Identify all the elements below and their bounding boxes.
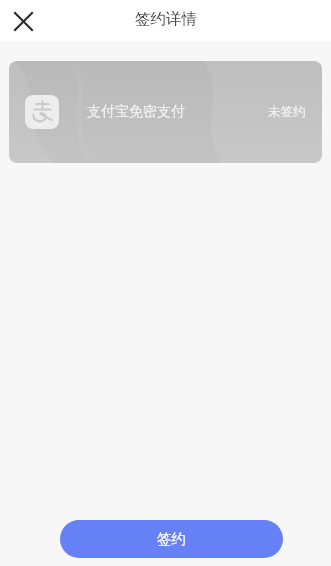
staticText: 签约: [157, 530, 186, 548]
button[interactable]: Close: [4, 2, 42, 40]
staticText: 未签约: [268, 104, 306, 120]
button[interactable]: 支付宝免密支付: [9, 61, 322, 163]
staticText: 签约详情: [135, 9, 197, 29]
button[interactable]: 签约: [60, 520, 283, 558]
staticText: 支付宝免密支付: [87, 103, 185, 121]
